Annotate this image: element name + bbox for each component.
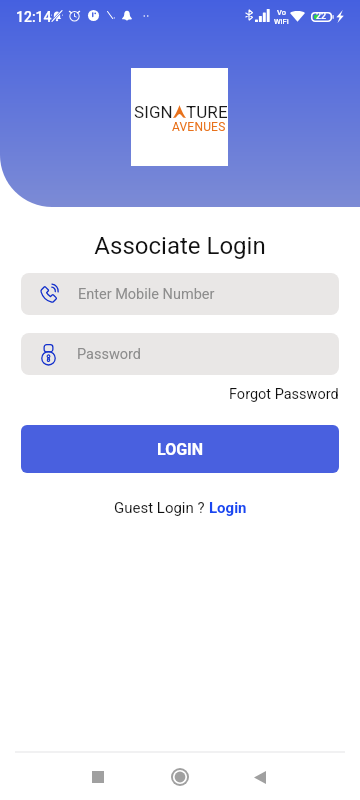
button[interactable]: Back [240,756,280,796]
staticText: Password [77,346,142,363]
staticText: LOGIN [157,440,204,459]
staticText: Forgot Password [229,386,339,403]
staticText: 22 [316,11,327,22]
button[interactable]: LOGIN [21,425,339,473]
staticText: Enter Mobile Number [78,286,215,303]
button[interactable]: Password [21,333,339,375]
staticText: SIGN [134,102,173,122]
button[interactable]: Recent apps [78,756,118,796]
staticText: Vo [277,8,286,17]
staticText: AVENUES [172,120,226,134]
button[interactable]: Login [209,499,247,517]
button[interactable]: Home [160,756,200,796]
staticText: Associate Login [0,232,360,260]
button[interactable]: Forgot Password [229,386,339,403]
staticText: 12:14 [16,9,52,25]
button[interactable]: Enter Mobile Number [21,273,339,315]
staticText: Guest Login ? [114,499,209,517]
staticText: TURE [186,102,228,122]
staticText: WiFi [274,17,289,26]
staticText: Login [209,499,247,517]
